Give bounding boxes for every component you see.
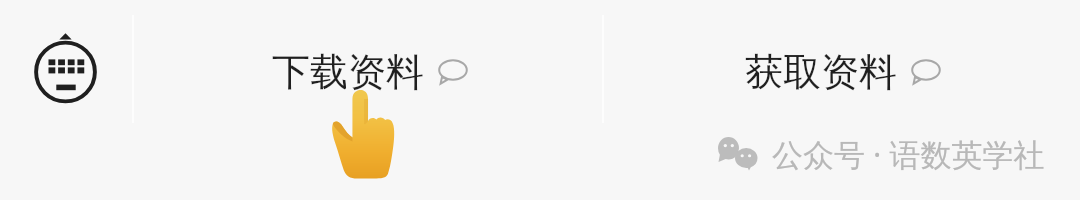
button[interactable]: 获取资料 xyxy=(745,48,941,96)
staticText: 获取资料 xyxy=(745,48,897,96)
staticText: 公众号 · 语数英学社 xyxy=(772,133,1045,175)
staticText: 下载资料 xyxy=(272,48,424,96)
button[interactable]: 下载资料 xyxy=(272,48,468,96)
button[interactable]: Keyboard xyxy=(30,30,106,106)
button[interactable]: 公众号 · 语数英学社 xyxy=(718,133,1045,175)
